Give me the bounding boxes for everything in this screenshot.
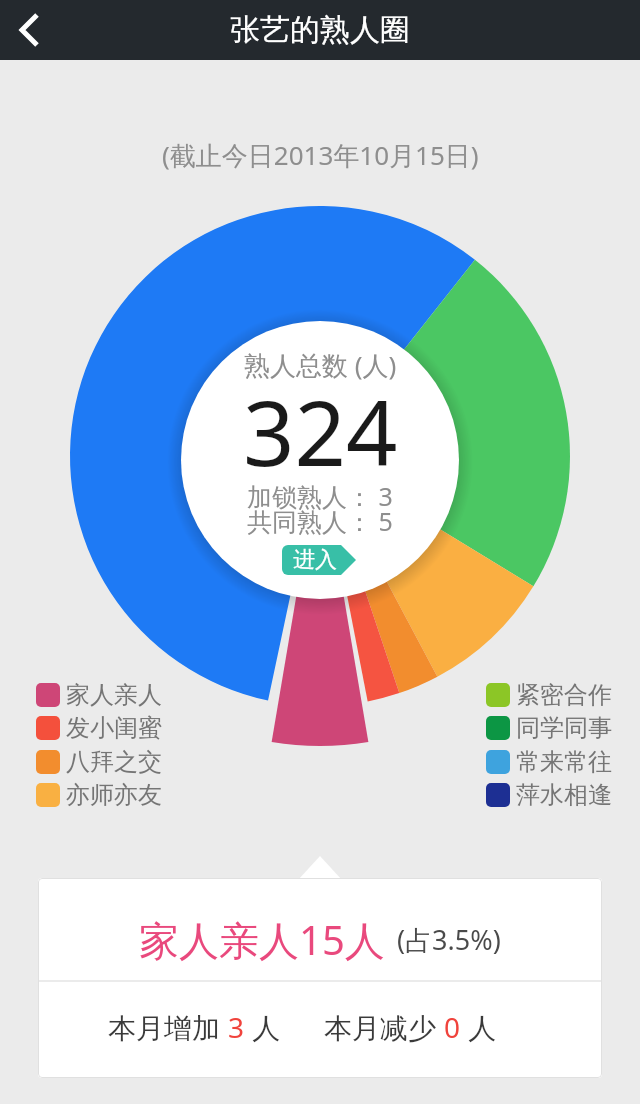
staticText: 家人亲人 <box>66 680 162 710</box>
button[interactable]: 进入 <box>282 545 356 575</box>
staticText: 人 <box>461 1008 497 1046</box>
staticText: 同学同事 <box>516 713 612 743</box>
button[interactable] <box>0 0 60 60</box>
staticText: 进入 <box>293 546 337 574</box>
staticText: 0 <box>444 1008 461 1046</box>
staticText: 共同熟人： 5 <box>247 504 393 538</box>
staticText: 常来常往 <box>516 747 612 777</box>
staticText: 发小闺蜜 <box>66 713 162 743</box>
staticText: 324 <box>243 370 398 493</box>
staticText: (截止今日2013年10月15日) <box>162 137 479 173</box>
staticText: 紧密合作 <box>516 680 612 710</box>
staticText: 本月减少 <box>324 1008 444 1046</box>
staticText: 亦师亦友 <box>66 780 162 810</box>
staticText: 家人亲人15人 <box>139 912 385 967</box>
staticText: 加锁熟人： 3 <box>247 479 393 513</box>
staticText: 张艺的熟人圈 <box>230 11 410 49</box>
staticText: (占3.5%) <box>397 921 501 958</box>
staticText: 人 <box>245 1008 281 1046</box>
staticText: 本月增加 <box>108 1008 228 1046</box>
staticText: 萍水相逢 <box>516 780 612 810</box>
staticText: 3 <box>228 1008 245 1046</box>
staticText: 八拜之交 <box>66 747 162 777</box>
staticText: 熟人总数 (人) <box>244 347 397 383</box>
